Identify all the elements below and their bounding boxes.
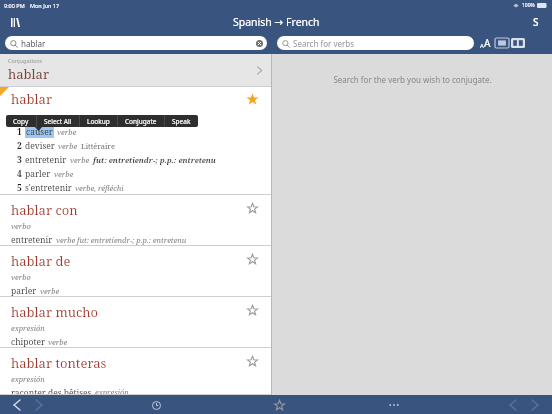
button[interactable]: Forward: [32, 398, 46, 412]
button[interactable]: Favorite hablar mucho: [247, 305, 258, 316]
staticText: verbe: [54, 169, 74, 179]
staticText: Littéraire: [81, 141, 115, 151]
button[interactable]: Single pane: [494, 37, 510, 49]
staticText: verbo: [11, 272, 31, 282]
staticText: 1: [17, 126, 22, 138]
staticText: parler: [25, 168, 51, 180]
staticText: verbe: [58, 141, 78, 151]
button[interactable]: More: [386, 397, 402, 413]
staticText: hablar tonteras: [11, 354, 107, 372]
button[interactable]: hablar de: [0, 246, 272, 297]
staticText: parler: [11, 285, 37, 297]
staticText: hablar mucho: [11, 303, 99, 321]
staticText: hablar con: [11, 201, 78, 219]
staticText: verbe: [70, 155, 90, 165]
staticText: Lookup: [87, 117, 110, 126]
staticText: s'entretenir: [25, 182, 72, 194]
button[interactable]: History: [148, 397, 164, 413]
staticText: 9:00 PM: [4, 2, 25, 9]
button[interactable]: Back: [10, 398, 24, 412]
staticText: verbe: [48, 337, 68, 347]
button[interactable]: Split pane: [510, 37, 526, 49]
button[interactable]: Next entry: [528, 398, 542, 412]
staticText: 3: [17, 154, 22, 166]
staticText: verbe fut: entretiendr-; p.p.: entretenu: [56, 235, 187, 245]
staticText: Search for the verb you wish to conjugat…: [333, 74, 492, 85]
staticText: Conjugate: [125, 117, 157, 126]
staticText: chipoter: [11, 336, 45, 348]
staticText: entretenir: [11, 234, 53, 246]
button[interactable]: Text size: [478, 35, 492, 51]
staticText: causer: [26, 126, 53, 138]
staticText: deviser: [25, 140, 55, 152]
staticText: fut: entretiendr-; p.p.: entretenu: [93, 155, 216, 165]
button[interactable]: Favorite hablar de: [247, 254, 258, 265]
staticText: 5: [17, 182, 22, 194]
staticText: entretenir: [25, 154, 67, 166]
button[interactable]: hablar: [0, 87, 272, 195]
button[interactable]: Select All: [44, 115, 72, 127]
button[interactable]: Search for verbs: [277, 36, 474, 50]
staticText: Search for verbs: [293, 38, 355, 49]
button[interactable]: hablar: [5, 36, 267, 50]
button[interactable]: hablar mucho: [0, 297, 272, 348]
staticText: expresión: [11, 323, 45, 333]
button[interactable]: Conjugations: [0, 54, 272, 87]
staticText: Conjugations: [8, 57, 43, 64]
staticText: Spanish → French: [233, 15, 320, 29]
button[interactable]: Favorite hablar con: [247, 203, 258, 214]
staticText: expresión: [11, 374, 45, 384]
staticText: hablar: [8, 65, 50, 83]
button[interactable]: Speak: [172, 115, 191, 127]
staticText: A: [480, 42, 484, 50]
staticText: hablar: [11, 90, 53, 108]
button[interactable]: Swap languages: [528, 14, 544, 30]
button[interactable]: Previous entry: [506, 398, 520, 412]
button[interactable]: Library: [7, 14, 23, 30]
button[interactable]: Conjugate: [125, 115, 157, 127]
button[interactable]: hablar tonteras: [0, 348, 272, 395]
staticText: Speak: [172, 117, 191, 126]
button[interactable]: Favorites: [271, 397, 287, 413]
staticText: 100%: [522, 2, 535, 9]
button[interactable]: Copy: [13, 115, 29, 127]
staticText: S: [533, 15, 539, 29]
button[interactable]: Lookup: [87, 115, 110, 127]
staticText: 4: [17, 168, 22, 180]
staticText: 2: [17, 140, 22, 152]
staticText: verbo: [11, 221, 31, 231]
staticText: hablar de: [11, 252, 71, 270]
button[interactable]: Favorite hablar tonteras: [247, 356, 258, 367]
staticText: expresión: [95, 387, 129, 395]
staticText: Copy: [13, 117, 29, 126]
button[interactable]: Favorited hablar: [246, 93, 259, 106]
button[interactable]: hablar con: [0, 195, 272, 246]
staticText: verbe: [57, 127, 77, 137]
staticText: verbe, réfléchi: [75, 183, 124, 193]
staticText: Select All: [44, 117, 72, 126]
staticText: Mon Jun 17: [30, 2, 60, 9]
staticText: hablar: [21, 38, 46, 49]
button[interactable]: Clear: [256, 40, 263, 47]
staticText: verbe: [40, 286, 60, 296]
staticText: raconter des bêtises: [11, 387, 92, 395]
staticText: A: [484, 36, 491, 50]
